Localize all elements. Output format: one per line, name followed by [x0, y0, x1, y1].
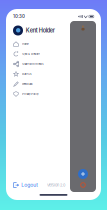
- staticText: Logout: [21, 182, 38, 188]
- button[interactable]: Home: [13, 39, 61, 49]
- button[interactable]: Rate Us: [13, 69, 61, 79]
- button[interactable]: Feedback: [13, 79, 61, 89]
- staticText: Rate Us: [22, 72, 31, 75]
- button[interactable]: Kent Holder: [13, 25, 59, 36]
- staticText: Version 2.0: [47, 183, 65, 187]
- staticText: Home: [22, 42, 28, 45]
- button[interactable]: Share with friends: [13, 59, 61, 69]
- staticText: Kent Holder: [26, 27, 55, 34]
- staticText: 10:30: [13, 14, 25, 19]
- staticText: Privacy Policy: [22, 92, 38, 95]
- button[interactable]: Privacy Policy: [13, 89, 61, 99]
- button[interactable]: Sync & Restore: [13, 49, 61, 59]
- button[interactable]: Add: [78, 169, 88, 179]
- staticText: Share with friends: [22, 62, 43, 65]
- button[interactable]: Logout: [13, 181, 38, 189]
- button[interactable]: Record: [80, 182, 86, 188]
- staticText: Sync & Restore: [22, 52, 39, 55]
- staticText: Feedback: [22, 82, 32, 85]
